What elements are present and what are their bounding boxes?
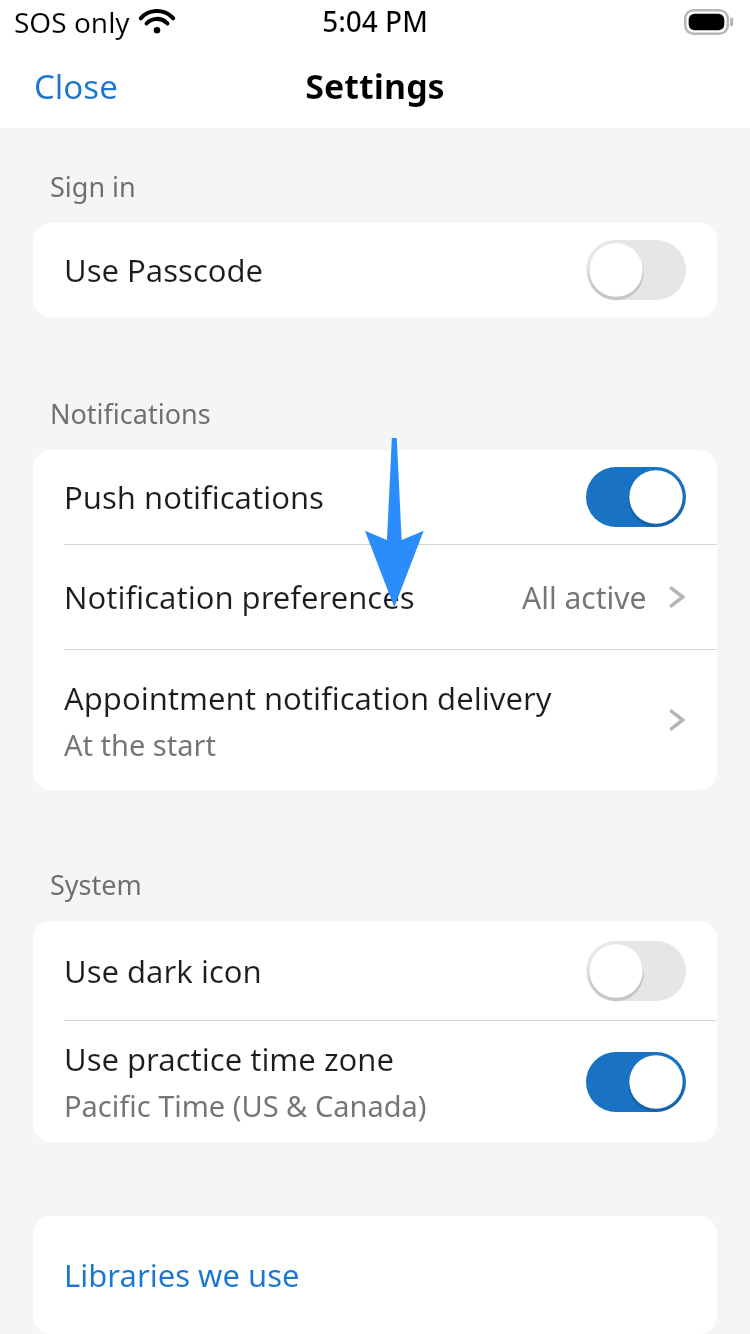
- button[interactable]: Appointment notification delivery: [33, 650, 717, 790]
- button[interactable]: Use practice time zone: [33, 1021, 717, 1142]
- button[interactable]: Use dark icon: [33, 921, 717, 1020]
- button[interactable]: Off: [586, 240, 686, 300]
- staticText: Use dark icon: [64, 950, 262, 992]
- staticText: Use practice time zone: [64, 1038, 394, 1080]
- staticText: All active: [522, 577, 647, 618]
- button[interactable]: Libraries we use: [33, 1216, 717, 1334]
- staticText: Close: [34, 64, 118, 109]
- staticText: Appointment notification delivery: [64, 677, 552, 719]
- button[interactable]: Notification preferences: [33, 545, 717, 649]
- button[interactable]: Off: [586, 941, 686, 1001]
- staticText: Sign in: [50, 168, 136, 205]
- staticText: System: [50, 866, 142, 903]
- button[interactable]: Use Passcode: [33, 223, 717, 317]
- staticText: Pacific Time (US & Canada): [64, 1086, 427, 1125]
- staticText: Libraries we use: [64, 1254, 300, 1296]
- staticText: Push notifications: [64, 476, 324, 518]
- staticText: At the start: [64, 725, 216, 764]
- button[interactable]: On: [586, 1052, 686, 1112]
- button[interactable]: On: [586, 467, 686, 527]
- button[interactable]: Push notifications: [33, 450, 717, 544]
- staticText: Notification preferences: [64, 576, 415, 618]
- staticText: SOS only: [14, 3, 130, 41]
- staticText: Settings: [305, 63, 445, 109]
- staticText: Use Passcode: [64, 249, 264, 291]
- staticText: Notifications: [50, 395, 211, 432]
- staticText: 5:04 PM: [322, 2, 428, 40]
- button[interactable]: Close: [0, 52, 152, 121]
